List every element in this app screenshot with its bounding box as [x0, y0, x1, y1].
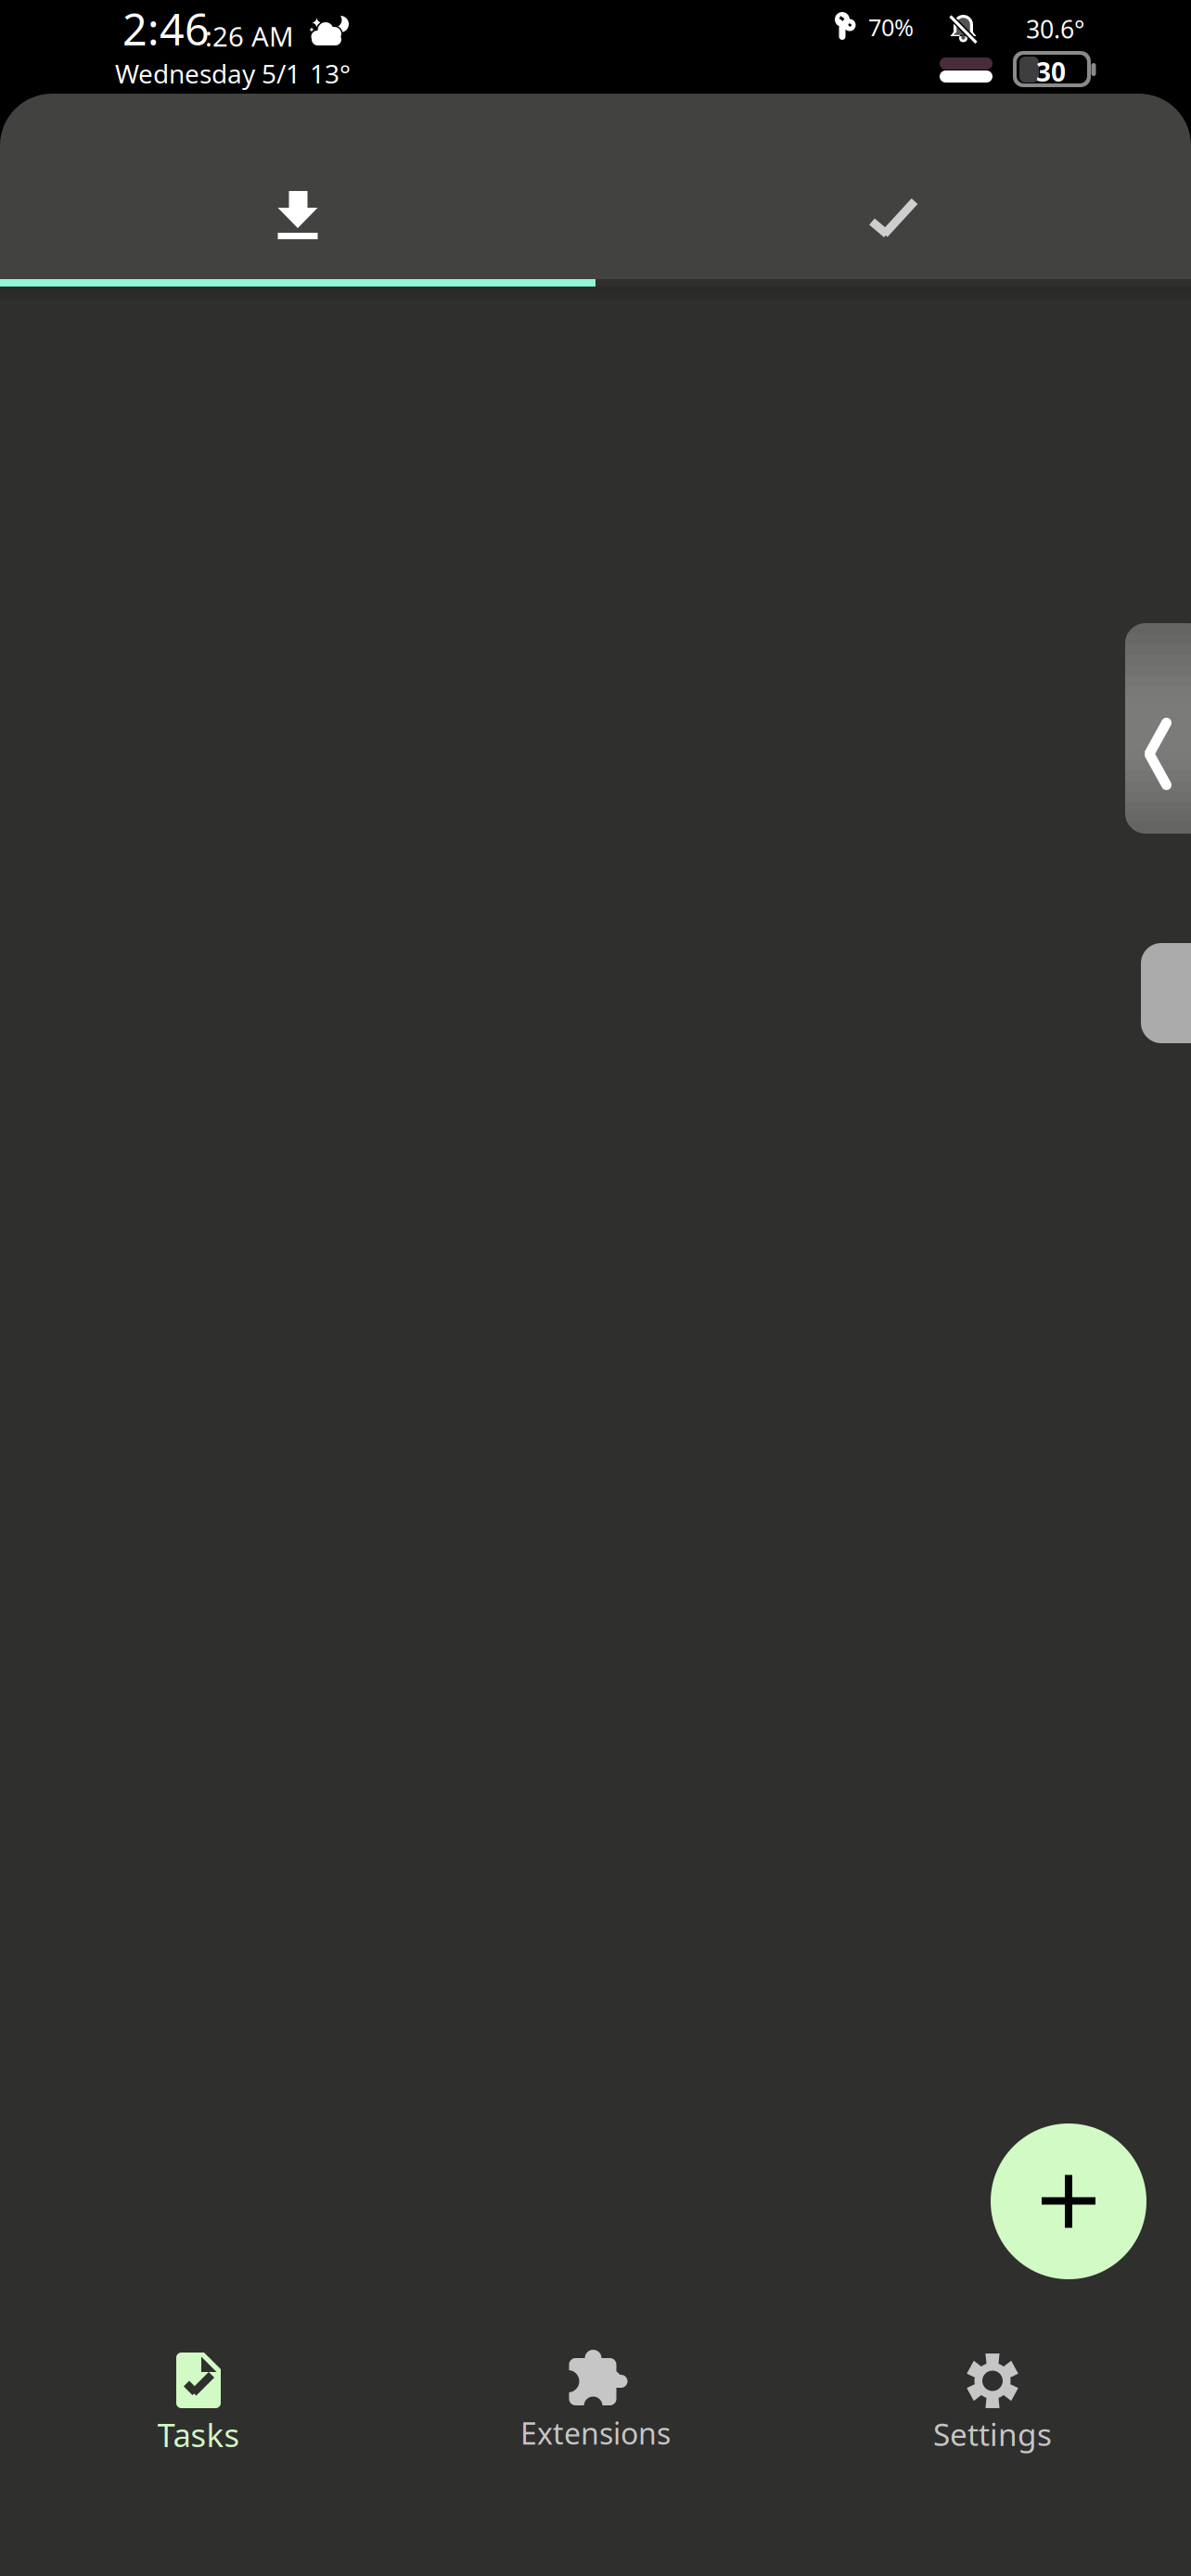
staticText: Wednesday 5/1 — [115, 56, 301, 91]
staticText: :26 AM — [205, 18, 294, 55]
staticText: 30.6° — [1026, 12, 1084, 46]
staticText: 2:46 — [122, 0, 210, 58]
button[interactable]: Completed — [595, 94, 1191, 279]
staticText: Tasks — [157, 2413, 240, 2457]
staticText: Settings — [933, 2413, 1052, 2455]
staticText: 13° — [310, 56, 351, 91]
staticText: 30 — [1036, 54, 1066, 89]
button[interactable]: Tasks — [0, 2308, 397, 2493]
button[interactable]: Extensions — [397, 2308, 794, 2493]
button[interactable]: Add task — [991, 2123, 1146, 2279]
button[interactable]: Inbox — [0, 94, 595, 279]
staticText: Extensions — [520, 2413, 671, 2453]
staticText: 70% — [868, 11, 914, 43]
button[interactable]: Settings — [794, 2308, 1191, 2493]
